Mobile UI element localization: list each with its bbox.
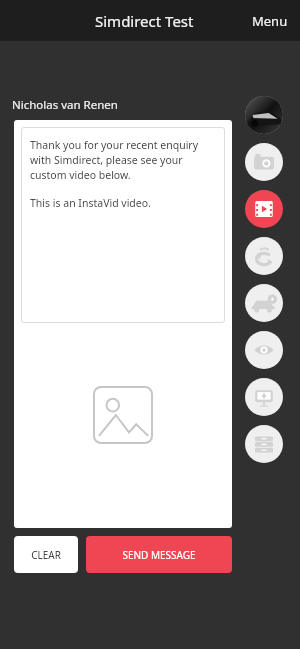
- button[interactable]: CLEAR: [14, 536, 78, 573]
- staticText: Simdirect Test: [95, 11, 194, 31]
- button[interactable]: Preview: [245, 331, 283, 369]
- staticText: Thank you for your recent enquiry with S…: [30, 138, 216, 182]
- staticText: SEND MESSAGE: [122, 548, 196, 562]
- button[interactable]: Video: [245, 190, 283, 228]
- button[interactable]: 360 view: [245, 237, 283, 275]
- button[interactable]: Files: [245, 425, 283, 463]
- button[interactable]: SEND MESSAGE: [86, 536, 232, 573]
- button[interactable]: Photo: [245, 143, 283, 181]
- button[interactable]: Profile photo: [245, 96, 283, 134]
- button[interactable]: Thank you for your recent enquiry with S…: [21, 127, 225, 323]
- button[interactable]: Add vehicle: [245, 284, 283, 322]
- staticText: CLEAR: [31, 548, 61, 562]
- button[interactable]: Menu: [240, 4, 300, 38]
- button[interactable]: Add screen: [245, 378, 283, 416]
- staticText: Nicholas van Renen: [12, 97, 118, 113]
- staticText: This is an InstaVid video.: [30, 196, 151, 210]
- staticText: Menu: [252, 12, 288, 30]
